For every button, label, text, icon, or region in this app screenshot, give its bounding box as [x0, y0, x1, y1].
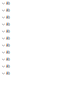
staticText: Ab [6, 44, 10, 47]
staticText: Ab [6, 58, 10, 61]
staticText: Ab [6, 9, 10, 12]
staticText: Ab [6, 72, 10, 75]
staticText: Ab [6, 16, 10, 19]
staticText: Ab [6, 51, 10, 54]
staticText: Ab [6, 65, 10, 68]
staticText: Ab [6, 23, 10, 26]
staticText: Ab [6, 37, 10, 40]
staticText: Ab [6, 30, 10, 33]
staticText: Ab [6, 2, 10, 5]
